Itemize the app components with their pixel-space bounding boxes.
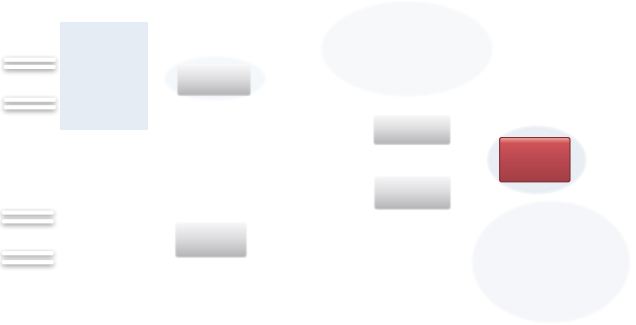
button[interactable]: Control xyxy=(373,114,451,145)
button[interactable]: Selected control xyxy=(499,137,570,182)
button[interactable]: Control xyxy=(176,64,251,96)
button[interactable]: Control xyxy=(174,222,247,258)
button[interactable]: Control xyxy=(373,176,451,210)
